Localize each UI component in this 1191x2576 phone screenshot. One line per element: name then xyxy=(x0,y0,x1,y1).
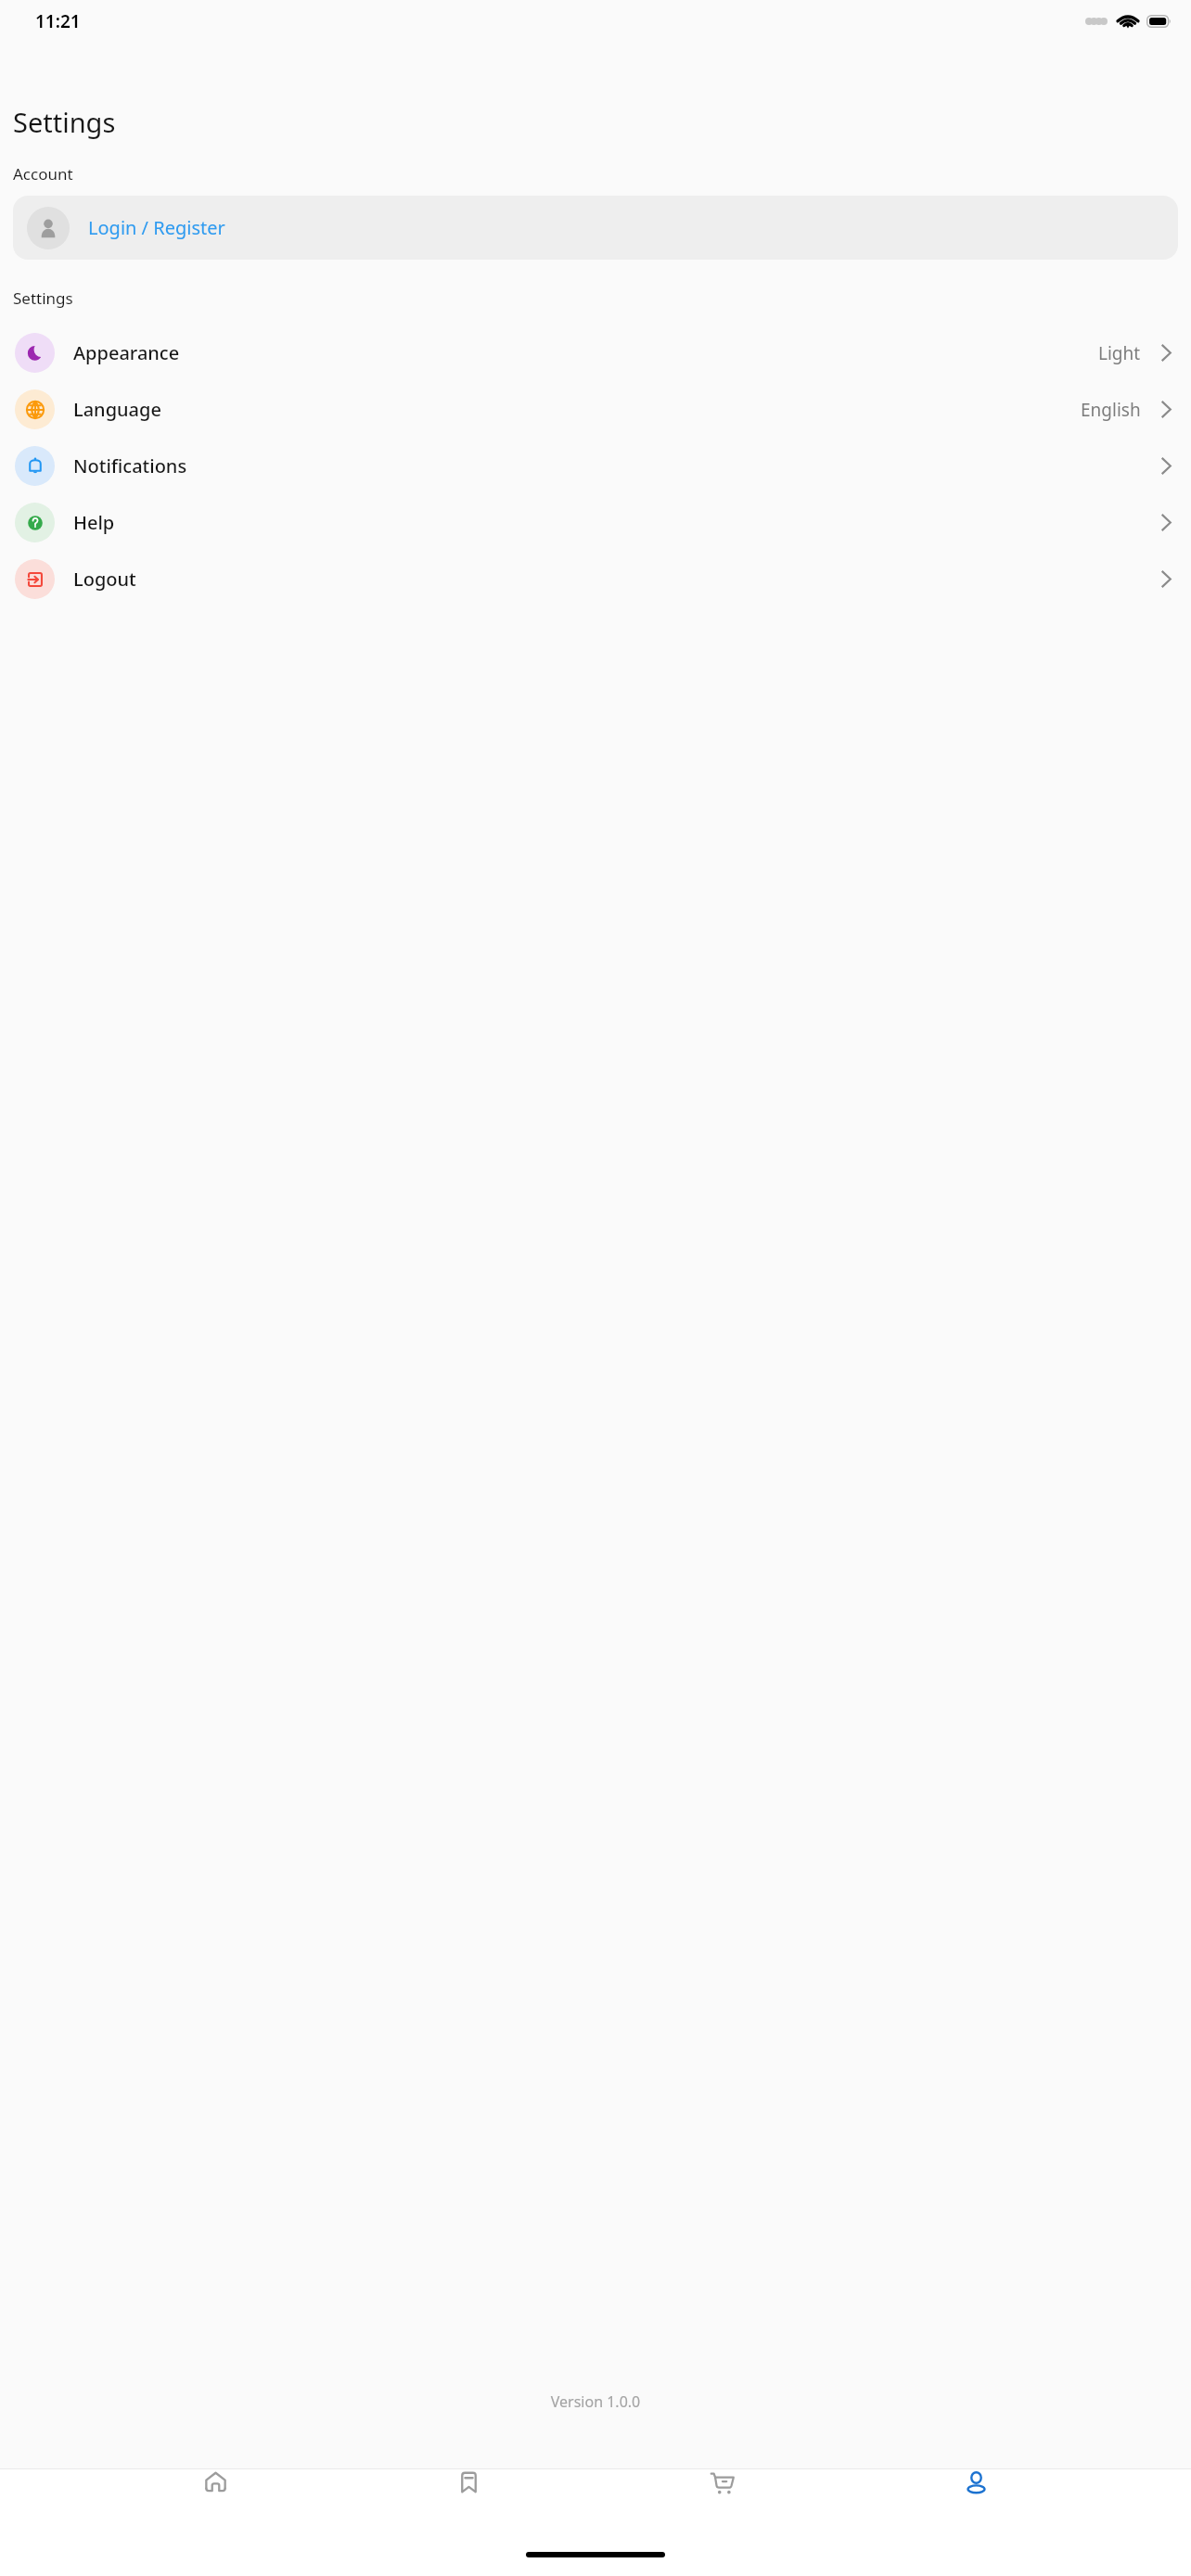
staticText: Account xyxy=(13,163,73,185)
button[interactable]: Login / Register xyxy=(13,196,1178,260)
button[interactable]: Home xyxy=(177,2469,253,2532)
staticText: Notifications xyxy=(73,453,187,478)
button[interactable]: Bookmarks xyxy=(430,2469,506,2532)
button[interactable]: Language xyxy=(0,381,1191,438)
staticText: Language xyxy=(73,397,161,422)
staticText: Light xyxy=(1098,341,1141,365)
staticText: Version 1.0.0 xyxy=(0,2391,1191,2412)
staticText: 11:21 xyxy=(35,9,81,33)
button[interactable]: Logout xyxy=(0,551,1191,607)
staticText: Settings xyxy=(13,104,116,140)
staticText: Settings xyxy=(13,287,73,309)
button[interactable]: Cart xyxy=(685,2469,761,2532)
button[interactable]: Appearance xyxy=(0,325,1191,381)
button[interactable]: Profile xyxy=(938,2469,1014,2532)
staticText: English xyxy=(1081,398,1141,422)
staticText: Help xyxy=(73,510,115,535)
button[interactable]: Help xyxy=(0,494,1191,551)
staticText: Logout xyxy=(73,567,136,592)
staticText: Appearance xyxy=(73,340,180,365)
button[interactable]: Notifications xyxy=(0,438,1191,494)
staticText: Login / Register xyxy=(88,215,225,240)
